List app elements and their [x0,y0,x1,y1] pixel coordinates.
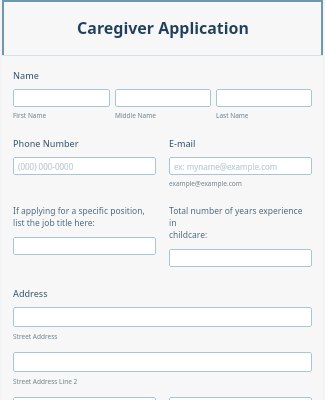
staticText: First Name [13,111,47,120]
staticText: Street Address [13,332,58,341]
staticText: Last Name [216,111,249,120]
staticText: Total number of years experience in chil… [169,205,312,241]
button[interactable] [13,237,156,255]
button[interactable] [13,397,156,400]
staticText: (000) 000-0000 [18,161,74,172]
button[interactable] [169,249,312,267]
staticText: example@example.com [169,179,242,188]
staticText: ex: myname@example.com [174,161,278,172]
button[interactable]: (000) 000-0000 [13,157,156,175]
staticText: Phone Number [13,137,79,149]
staticText: Street Address Line 2 [13,377,78,386]
staticText: Address [13,287,48,299]
button[interactable] [115,89,211,107]
button[interactable] [13,89,110,107]
staticText: Caregiver Application [77,17,249,39]
button[interactable] [216,89,312,107]
button[interactable] [13,352,312,372]
staticText: Middle Name [115,111,156,120]
button[interactable] [169,397,312,400]
staticText: Name [13,69,39,81]
button[interactable] [13,307,312,327]
staticText: If applying for a specific position, lis… [13,205,145,229]
staticText: E-mail [169,137,196,149]
button[interactable]: ex: myname@example.com [169,157,312,175]
